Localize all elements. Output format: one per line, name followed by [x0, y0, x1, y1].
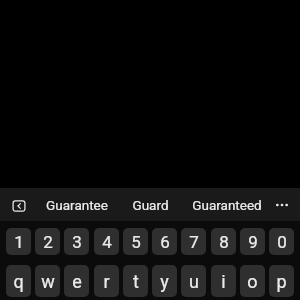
- staticText: 4: [102, 232, 112, 252]
- button[interactable]: t: [123, 265, 148, 297]
- staticText: q: [13, 271, 24, 292]
- button[interactable]: Guard: [120, 188, 181, 221]
- button[interactable]: 7: [181, 228, 206, 255]
- staticText: Guarantee: [46, 197, 108, 213]
- staticText: 8: [219, 232, 229, 252]
- button[interactable]: 6: [152, 228, 177, 255]
- button[interactable]: 5: [123, 228, 148, 255]
- button[interactable]: e: [64, 265, 89, 297]
- staticText: p: [276, 271, 287, 292]
- staticText: 9: [248, 232, 258, 252]
- staticText: 5: [131, 232, 141, 252]
- staticText: Guard: [132, 197, 169, 213]
- staticText: r: [103, 271, 110, 292]
- staticText: 7: [189, 232, 199, 252]
- button[interactable]: 9: [240, 228, 265, 255]
- staticText: 3: [72, 232, 82, 252]
- staticText: o: [247, 271, 258, 292]
- staticText: e: [72, 271, 82, 292]
- button[interactable]: y: [152, 265, 177, 297]
- button[interactable]: w: [35, 265, 60, 297]
- staticText: i: [221, 271, 226, 292]
- staticText: 2: [43, 232, 53, 252]
- staticText: w: [41, 271, 55, 292]
- staticText: u: [189, 271, 199, 292]
- staticText: 0: [277, 232, 287, 252]
- staticText: y: [160, 271, 169, 292]
- button[interactable]: i: [211, 265, 236, 297]
- button[interactable]: q: [6, 265, 31, 297]
- button[interactable]: 1: [6, 228, 31, 255]
- button[interactable]: p: [269, 265, 294, 297]
- button[interactable]: Previous suggestions: [6, 191, 31, 220]
- button[interactable]: u: [181, 265, 206, 297]
- button[interactable]: 2: [35, 228, 60, 255]
- staticText: Guaranteed: [192, 197, 262, 213]
- button[interactable]: 4: [94, 228, 119, 255]
- staticText: 6: [160, 232, 170, 252]
- button[interactable]: Guarantee: [33, 188, 120, 221]
- button[interactable]: 3: [64, 228, 89, 255]
- button[interactable]: More suggestions: [270, 190, 294, 219]
- button[interactable]: 8: [211, 228, 236, 255]
- staticText: 1: [14, 232, 24, 252]
- button[interactable]: r: [94, 265, 119, 297]
- staticText: t: [133, 271, 139, 292]
- button[interactable]: 0: [269, 228, 294, 255]
- button[interactable]: Guaranteed: [181, 188, 272, 221]
- button[interactable]: o: [240, 265, 265, 297]
